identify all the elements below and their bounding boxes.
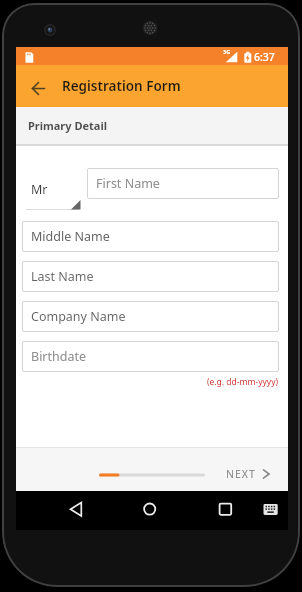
staticText: Registration Form (62, 77, 181, 95)
staticText: Company Name (31, 308, 126, 325)
button[interactable] (60, 499, 92, 521)
button[interactable]: Birthdate (22, 341, 279, 372)
button[interactable] (134, 499, 166, 521)
button[interactable]: Company Name (22, 301, 279, 332)
button[interactable] (210, 499, 242, 521)
staticText: Mr (31, 181, 48, 198)
staticText: Birthdate (31, 348, 87, 365)
staticText: 6:37 (254, 50, 275, 64)
button[interactable] (25, 75, 51, 101)
staticText: NEXT (226, 467, 256, 481)
staticText: Primary Detail (28, 118, 107, 133)
button[interactable]: First Name (87, 168, 279, 199)
button[interactable] (256, 499, 286, 521)
staticText: First Name (96, 175, 160, 192)
staticText: (e.g. dd-mm-yyyy) (207, 376, 279, 388)
staticText: 3G (223, 48, 231, 55)
button[interactable]: NEXT (221, 464, 279, 484)
button[interactable]: Last Name (22, 261, 279, 292)
button[interactable]: Mr (23, 174, 81, 210)
staticText: Last Name (31, 268, 94, 285)
staticText: Middle Name (31, 228, 110, 245)
button[interactable]: Middle Name (22, 221, 279, 252)
